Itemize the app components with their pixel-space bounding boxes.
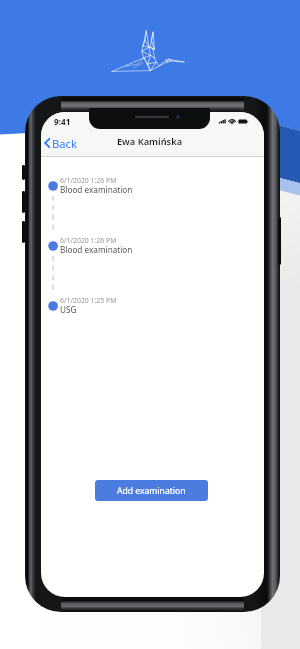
other: Back [43,136,51,150]
staticText: 6/1/2020 1:26 PM [60,176,117,185]
staticText: Blood examination [60,244,133,255]
button[interactable]: 6/1/2020 1:26 PM [41,237,264,257]
staticText: Ewa Kamińska [41,135,261,148]
staticText: Blood examination [60,184,133,195]
staticText: USG [60,304,77,315]
staticText: 9:41 [54,116,71,127]
button[interactable]: 6/1/2020 1:26 PM [41,177,264,197]
staticText: Add examination [117,485,186,497]
button[interactable]: Back [43,135,76,151]
staticText: 6/1/2020 1:26 PM [60,236,117,245]
button[interactable]: 6/1/2020 1:25 PM [41,297,264,317]
staticText: 6/1/2020 1:25 PM [60,296,117,305]
button[interactable]: Add examination [95,480,208,501]
staticText: Back [52,136,77,151]
